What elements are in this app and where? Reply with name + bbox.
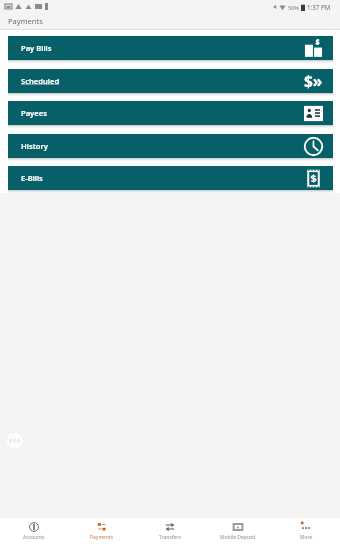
button[interactable]: More options <box>5 431 24 450</box>
button[interactable]: Accounts <box>0 519 68 544</box>
staticText: Pay Bills <box>21 43 52 53</box>
button[interactable]: More <box>272 519 340 544</box>
staticText: Payments <box>8 16 43 26</box>
staticText: History <box>21 141 48 151</box>
staticText: More <box>300 534 313 541</box>
button[interactable]: Mobile Deposit <box>204 519 272 544</box>
button[interactable]: Payments <box>68 519 136 544</box>
staticText: 50% <box>288 4 299 11</box>
button[interactable]: Payees <box>8 101 333 125</box>
button[interactable]: History <box>8 134 333 158</box>
staticText: Mobile Deposit <box>220 534 256 541</box>
staticText: Payments <box>90 534 114 541</box>
button[interactable]: Pay Bills <box>8 36 333 60</box>
staticText: Scheduled <box>21 76 60 86</box>
button[interactable]: Transfers <box>136 519 204 544</box>
button[interactable]: Scheduled <box>8 69 333 93</box>
staticText: Payees <box>21 108 47 118</box>
staticText: $» <box>304 70 323 89</box>
staticText: Transfers <box>159 534 181 541</box>
staticText: Accounts <box>23 534 45 541</box>
button[interactable]: E-Bills <box>8 166 333 190</box>
staticText: E-Bills <box>21 173 43 183</box>
staticText: 1:37 PM <box>307 3 331 11</box>
